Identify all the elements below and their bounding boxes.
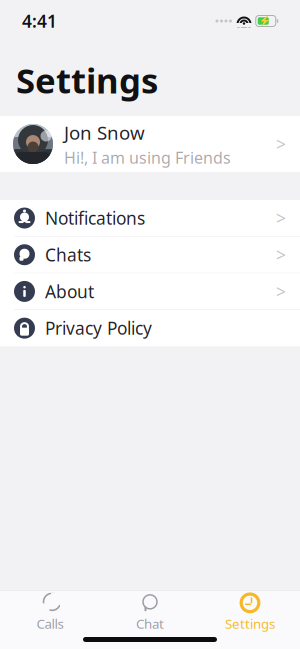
staticText: ⚡: [259, 16, 271, 26]
staticText: 4:41: [22, 9, 57, 32]
button[interactable]: Privacy Policy: [0, 310, 300, 346]
staticText: Jon Snow: [64, 120, 145, 145]
button[interactable]: About: [0, 273, 300, 310]
staticText: >: [276, 280, 286, 303]
staticText: Calls: [36, 615, 63, 632]
staticText: About: [45, 280, 94, 303]
staticText: Privacy Policy: [45, 317, 152, 340]
staticText: >: [276, 206, 286, 229]
staticText: Settings: [225, 615, 275, 632]
button[interactable]: Jon Snow: [0, 116, 300, 172]
staticText: Settings: [16, 57, 158, 103]
staticText: >: [276, 132, 286, 155]
staticText: Chat: [136, 615, 164, 632]
button[interactable]: Notifications: [0, 200, 300, 237]
staticText: Chats: [45, 243, 91, 266]
button[interactable]: Chats: [0, 237, 300, 273]
button[interactable]: Calls: [0, 591, 100, 635]
button[interactable]: Settings: [200, 591, 300, 635]
staticText: >: [276, 243, 286, 266]
staticText: Notifications: [45, 206, 145, 229]
staticText: Hi!, I am using Friends: [64, 147, 231, 168]
button[interactable]: Chat: [100, 591, 200, 635]
